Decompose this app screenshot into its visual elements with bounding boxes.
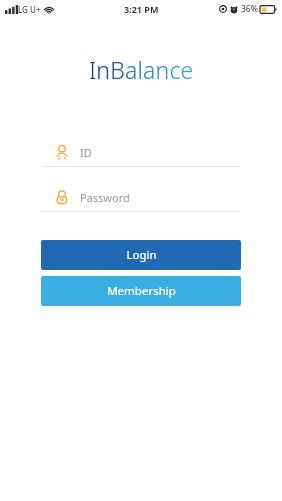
- staticText: InBalance: [89, 54, 194, 85]
- staticText: LG U+: [18, 4, 41, 15]
- staticText: Login: [126, 247, 157, 263]
- other: Password: [56, 190, 68, 204]
- staticText: Password: [80, 190, 130, 205]
- button[interactable]: User ID: [42, 139, 240, 167]
- staticText: 36%: [241, 3, 258, 15]
- staticText: 3:21 PM: [124, 3, 159, 15]
- staticText: Membership: [107, 283, 176, 299]
- other: User ID: [56, 145, 68, 159]
- button[interactable]: Membership: [41, 276, 241, 306]
- button[interactable]: Login: [41, 240, 241, 270]
- button[interactable]: Password: [42, 184, 240, 212]
- staticText: ID: [80, 145, 92, 160]
